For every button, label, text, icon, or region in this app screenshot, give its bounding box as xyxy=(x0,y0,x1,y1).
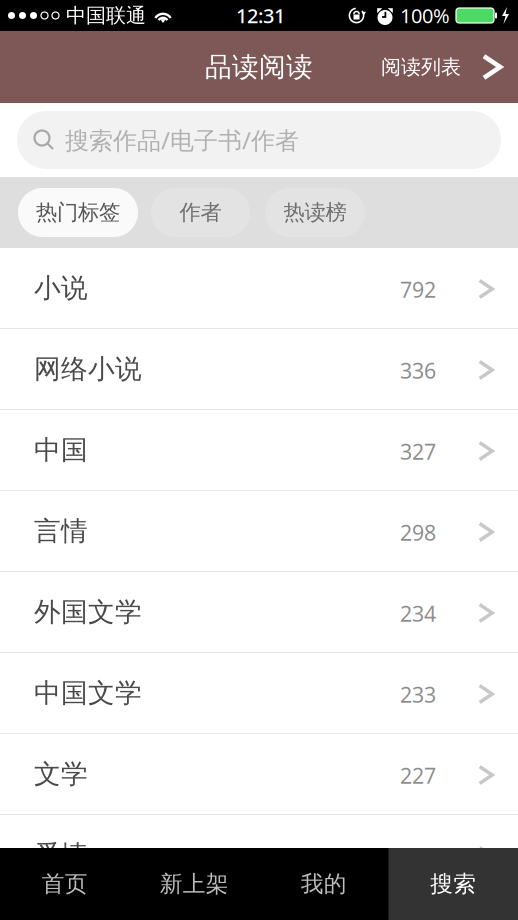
button[interactable]: 网络小说 xyxy=(0,329,518,410)
staticText: 热读榜 xyxy=(283,199,346,226)
staticText: 搜索作品/电子书/作者 xyxy=(65,124,299,156)
button[interactable]: 文学 xyxy=(0,734,518,815)
staticText: 网络小说 xyxy=(34,353,142,385)
button[interactable]: 热读榜 xyxy=(265,188,365,237)
staticText: 新上架 xyxy=(160,870,229,898)
staticText: 233 xyxy=(400,680,436,709)
button[interactable]: 小说 xyxy=(0,248,518,329)
staticText: 100% xyxy=(400,2,450,29)
staticText: 热门标签 xyxy=(36,199,120,226)
button[interactable]: 我的 xyxy=(259,848,388,920)
staticText: 中国文学 xyxy=(34,677,142,709)
button[interactable]: 搜索 xyxy=(388,848,518,920)
staticText: 言情 xyxy=(34,515,88,547)
staticText: 336 xyxy=(400,356,436,385)
staticText: 227 xyxy=(400,761,436,790)
button[interactable]: 中国 xyxy=(0,410,518,491)
staticText: 品读阅读 xyxy=(205,51,313,83)
button[interactable]: 搜索作品/电子书/作者 xyxy=(17,111,501,169)
button[interactable]: 阅读列表 xyxy=(381,41,518,92)
staticText: 中国联通 xyxy=(66,3,146,28)
button[interactable]: 言情 xyxy=(0,491,518,572)
staticText: 中国 xyxy=(34,434,88,466)
staticText: 搜索 xyxy=(430,870,476,898)
staticText: 作者 xyxy=(179,199,221,226)
button[interactable]: 作者 xyxy=(151,188,250,237)
button[interactable]: 首页 xyxy=(0,848,129,920)
staticText: 792 xyxy=(400,275,436,304)
button[interactable]: 爱情 xyxy=(0,815,518,896)
staticText: 文学 xyxy=(34,758,88,790)
staticText: 首页 xyxy=(42,870,88,898)
staticText: 我的 xyxy=(301,870,347,898)
staticText: 12:31 xyxy=(236,2,285,29)
staticText: 爱情 xyxy=(34,839,88,871)
staticText: 327 xyxy=(400,437,436,466)
button[interactable]: 外国文学 xyxy=(0,572,518,653)
staticText: 298 xyxy=(400,518,436,547)
staticText: 小说 xyxy=(34,272,88,304)
button[interactable]: 热门标签 xyxy=(18,188,138,237)
staticText: 234 xyxy=(400,599,436,628)
button[interactable]: 新上架 xyxy=(129,848,259,920)
staticText: 219 xyxy=(400,842,436,871)
staticText: 阅读列表 xyxy=(381,55,461,79)
staticText: 外国文学 xyxy=(34,596,142,628)
button[interactable]: 中国文学 xyxy=(0,653,518,734)
